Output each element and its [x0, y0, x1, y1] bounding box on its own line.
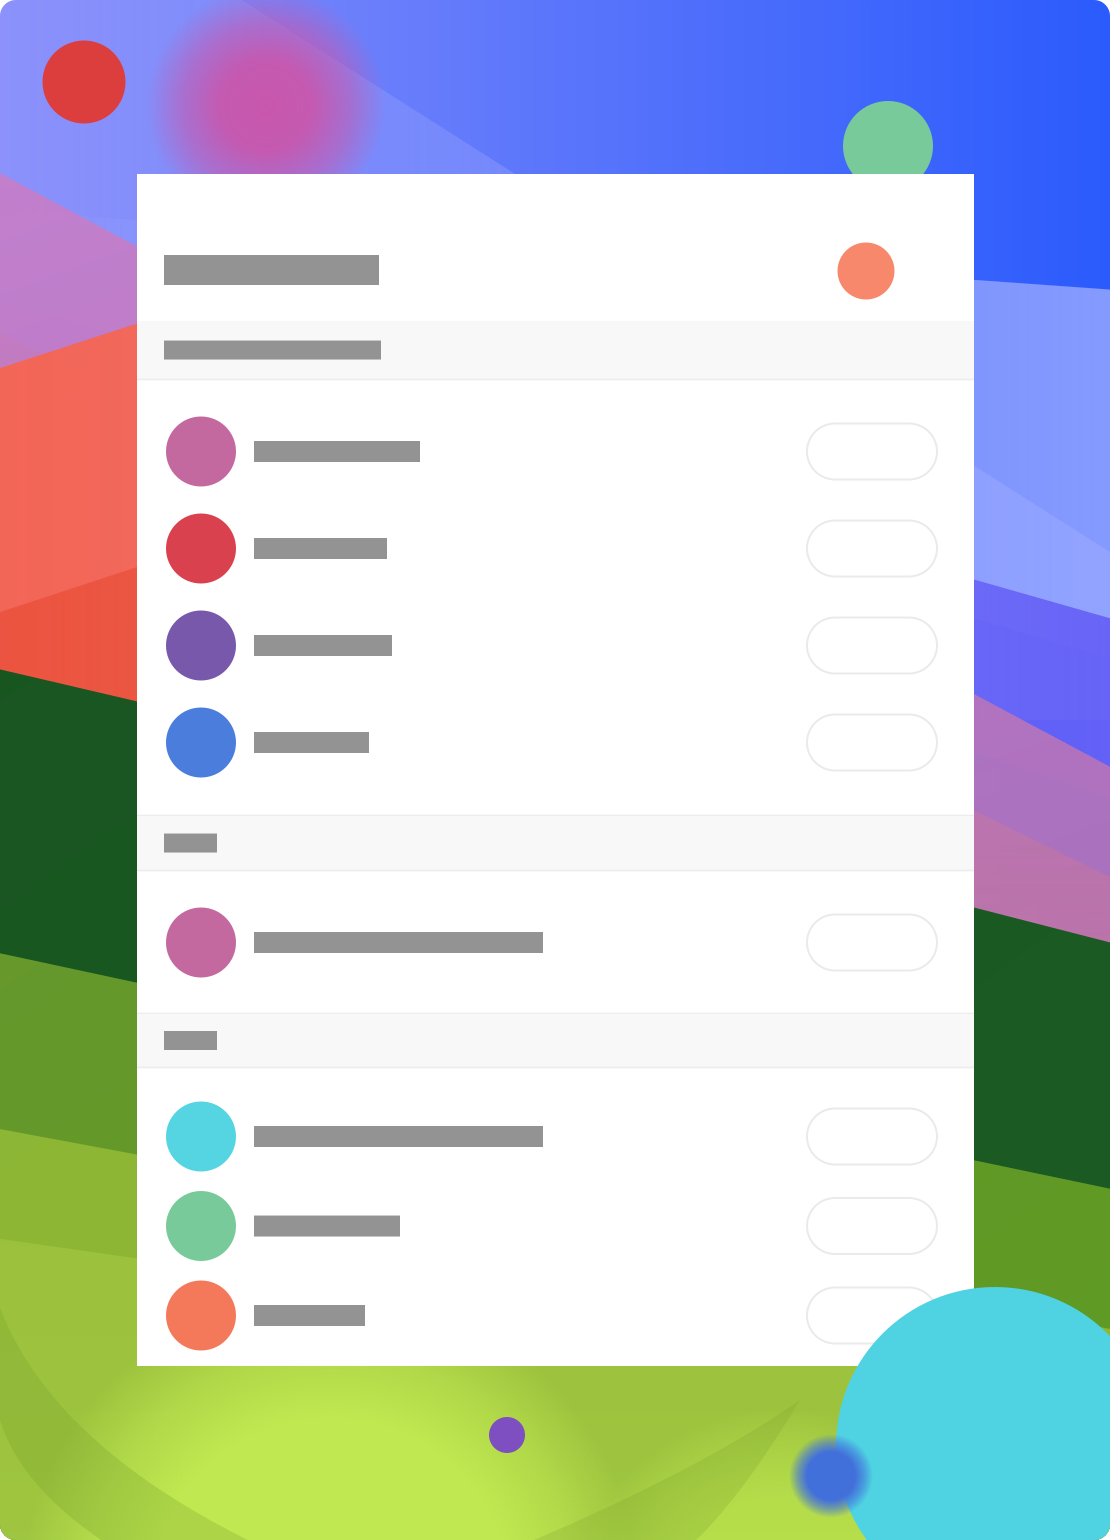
button[interactable] — [137, 174, 974, 1366]
button[interactable] — [137, 174, 974, 1366]
button[interactable] — [137, 174, 974, 1366]
button[interactable] — [137, 174, 974, 1366]
button[interactable] — [137, 174, 974, 1366]
button[interactable] — [137, 174, 974, 1366]
button[interactable] — [137, 174, 974, 1366]
button[interactable] — [137, 174, 974, 1366]
button[interactable]: Profile — [828, 233, 903, 308]
